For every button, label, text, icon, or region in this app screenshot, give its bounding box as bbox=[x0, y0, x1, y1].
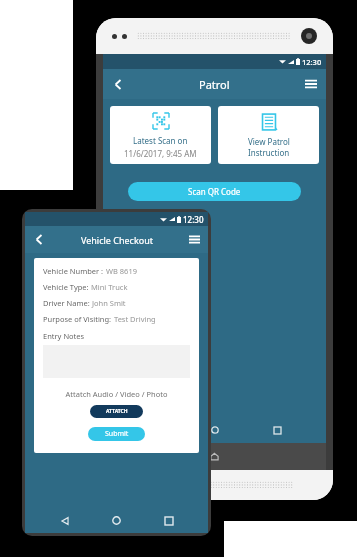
staticText: Driver Name: bbox=[43, 298, 92, 308]
button[interactable]: View Patrol bbox=[218, 106, 319, 164]
button[interactable]: Latest Scan on bbox=[110, 106, 211, 164]
button[interactable]: Recents bbox=[156, 508, 181, 533]
staticText: ATTATCH bbox=[106, 408, 128, 415]
button[interactable]: Menu bbox=[180, 226, 208, 253]
staticText: Entry Notes bbox=[43, 331, 85, 341]
staticText: Scan QR Code bbox=[188, 186, 241, 197]
staticText: Submit bbox=[105, 429, 129, 439]
staticText: 11/6/2017, 9:45 AM bbox=[124, 148, 197, 159]
staticText: Latest Scan on bbox=[133, 135, 188, 146]
button[interactable]: Scan QR Code bbox=[128, 182, 301, 201]
button[interactable]: Back bbox=[139, 417, 165, 443]
button[interactable]: ATTATCH bbox=[90, 405, 143, 418]
staticText: Vehicle Type: bbox=[43, 282, 91, 292]
staticText: Attatch Audio / Video / Photo bbox=[43, 389, 190, 399]
staticText: Patrol bbox=[199, 77, 230, 92]
button[interactable]: Home bbox=[104, 508, 129, 533]
staticText: Test Driving bbox=[114, 314, 156, 324]
button[interactable]: Back bbox=[103, 69, 133, 99]
staticText: 12:30 bbox=[302, 57, 322, 67]
button[interactable]: Back bbox=[52, 508, 77, 533]
staticText: Mini Truck bbox=[91, 282, 128, 292]
button[interactable]: Menu bbox=[296, 69, 326, 99]
staticText: Vehicle Checkout bbox=[81, 234, 153, 246]
staticText: Instruction bbox=[248, 147, 290, 158]
staticText: Purpose of Visiting: bbox=[43, 314, 114, 324]
button[interactable]: Home bbox=[202, 417, 228, 443]
staticText: View Patrol bbox=[248, 136, 290, 147]
staticText: WB 8619 bbox=[106, 266, 137, 276]
staticText: 12:30 bbox=[183, 214, 204, 225]
button[interactable]: Submit bbox=[88, 427, 145, 441]
staticText: Vehicle Number : bbox=[43, 266, 106, 276]
button[interactable]: Recents bbox=[264, 417, 290, 443]
staticText: John Smit bbox=[92, 298, 126, 308]
button[interactable]: Back bbox=[25, 226, 53, 253]
